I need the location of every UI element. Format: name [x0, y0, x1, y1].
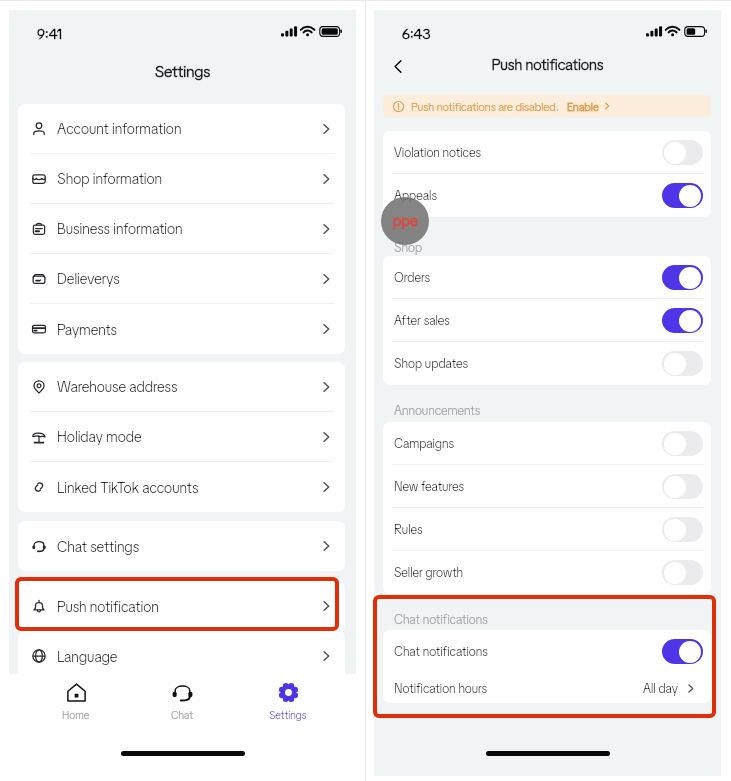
button[interactable]: Warehouse address [18, 362, 345, 412]
staticText: Shop [394, 239, 423, 256]
button[interactable]: Language [18, 631, 345, 681]
staticText: Payments [57, 320, 118, 339]
staticText: Holiday mode [57, 427, 142, 446]
button[interactable]: Linked TikTok accounts [18, 462, 345, 512]
button[interactable]: Chat settings [18, 521, 345, 571]
button[interactable]: Shop information [18, 154, 345, 204]
staticText: Notification hours [394, 680, 488, 697]
staticText: Chat notifications [394, 611, 488, 628]
button[interactable]: Payments [18, 304, 345, 354]
button[interactable]: New features [383, 465, 711, 507]
staticText: Shop information [57, 169, 163, 188]
staticText: ppe [393, 211, 418, 231]
button[interactable]: Back [384, 52, 412, 80]
staticText: Push notification [57, 597, 159, 616]
staticText: All day [643, 680, 678, 697]
button[interactable]: After sales [383, 299, 711, 341]
staticText: Announcements [394, 402, 481, 419]
staticText: Push notifications [374, 55, 721, 75]
staticText: Business information [57, 219, 183, 238]
staticText: Chat [171, 708, 194, 722]
staticText: Shop updates [394, 355, 469, 372]
staticText: Home [62, 708, 90, 722]
staticText: After sales [394, 312, 450, 329]
staticText: Campaigns [394, 435, 455, 452]
staticText: Violation notices [394, 144, 481, 161]
button[interactable]: Campaigns [383, 422, 711, 464]
staticText: Push notifications are disabled. [411, 99, 559, 114]
staticText: Account information [57, 119, 182, 138]
button[interactable]: Account information [18, 104, 345, 154]
button[interactable]: Holiday mode [18, 412, 345, 462]
staticText: Delieverys [57, 269, 120, 288]
button[interactable]: Appeals [383, 174, 711, 217]
button[interactable]: Chat notifications [383, 630, 711, 673]
staticText: Orders [394, 269, 430, 286]
staticText: Appeals [394, 187, 437, 204]
staticText: 6:43 [402, 25, 431, 43]
button[interactable]: Chat [129, 674, 235, 730]
staticText: 9:41 [37, 25, 63, 43]
staticText: Chat settings [57, 537, 140, 556]
button[interactable]: Push notification [18, 581, 345, 631]
button[interactable]: Rules [383, 508, 711, 550]
button[interactable]: Notification hours [383, 673, 711, 703]
staticText: Settings [269, 708, 307, 722]
button[interactable]: Delieverys [18, 254, 345, 304]
staticText: Settings [9, 61, 356, 82]
staticText: Enable [567, 99, 599, 114]
button[interactable]: Orders [383, 256, 711, 298]
staticText: Seller growth [394, 564, 464, 581]
staticText: Chat notifications [394, 643, 488, 660]
staticText: Linked TikTok accounts [57, 478, 199, 497]
button[interactable]: Push notifications are disabled. [383, 95, 711, 117]
button[interactable]: Settings [235, 674, 341, 730]
button[interactable]: Business information [18, 204, 345, 254]
staticText: Warehouse address [57, 377, 178, 396]
button[interactable]: Violation notices [383, 131, 711, 173]
button[interactable]: Home [23, 674, 129, 730]
button[interactable]: Seller growth [383, 551, 711, 594]
staticText: Rules [394, 521, 423, 538]
staticText: Language [57, 647, 118, 666]
staticText: New features [394, 478, 464, 495]
button[interactable]: Shop updates [383, 342, 711, 385]
